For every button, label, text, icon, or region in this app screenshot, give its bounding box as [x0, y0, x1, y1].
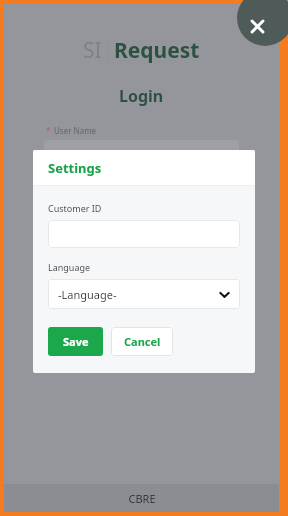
staticText: User Name — [54, 125, 97, 136]
staticText: Settings — [48, 159, 102, 177]
staticText: Save — [63, 334, 89, 349]
button[interactable]: Save — [48, 327, 103, 356]
staticText: -Language- — [58, 287, 117, 302]
staticText: Request — [114, 36, 200, 65]
staticText: * — [46, 125, 51, 136]
button[interactable]: Close — [237, 0, 288, 46]
staticText: Customer ID — [48, 202, 102, 214]
button[interactable] — [48, 220, 240, 248]
staticText: Cancel — [124, 334, 161, 349]
button[interactable]: Cancel — [111, 327, 173, 356]
staticText: SI — [83, 36, 102, 65]
staticText: Language — [48, 261, 91, 273]
staticText: Login — [119, 85, 164, 107]
staticText: CBRE — [128, 491, 156, 506]
button[interactable]: -Language- — [48, 279, 240, 309]
